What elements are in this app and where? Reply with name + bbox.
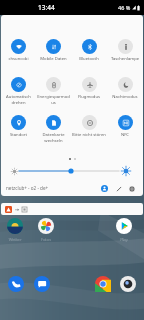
button[interactable]: Automatisch drehen	[1, 77, 36, 115]
button[interactable]	[1, 203, 143, 215]
button[interactable]: Phone	[8, 276, 24, 292]
staticText: Bitte nicht stören	[72, 132, 106, 138]
button[interactable]: Bluetooth	[71, 39, 107, 77]
staticText: Wetter	[7, 237, 23, 242]
button[interactable]: Fotos	[38, 218, 54, 242]
button[interactable]: Mobile Daten	[36, 39, 71, 77]
staticText: netzclub+ - o2 - de+	[6, 185, 49, 191]
button[interactable]: NFC	[107, 115, 143, 153]
staticText: Automatisch drehen	[2, 94, 35, 105]
button[interactable]: Energiesparmodus	[36, 77, 71, 115]
staticText: Standort	[2, 132, 35, 138]
button[interactable]: Datenkarte wechseln	[36, 115, 71, 153]
button[interactable]: Camera	[120, 276, 136, 292]
staticText: Energiesparmodus	[37, 94, 70, 105]
staticText: Flugmodus	[72, 94, 106, 100]
staticText: Datenkarte wechseln	[37, 132, 70, 143]
staticText: 13:44	[38, 3, 55, 12]
button[interactable]: Messages	[34, 276, 50, 292]
button[interactable]: Bitte nicht stören	[71, 115, 107, 153]
button[interactable]: Flugmodus	[71, 77, 107, 115]
staticText: Mobile Daten	[37, 56, 70, 62]
button[interactable]: Standort	[1, 115, 36, 153]
staticText: Bluetooth	[72, 56, 106, 62]
button[interactable]: Edit	[114, 184, 123, 193]
button[interactable]: Nachtmodus	[107, 77, 143, 115]
button[interactable]: Taschenlampe	[107, 39, 143, 77]
staticText: NFC	[108, 132, 142, 138]
button[interactable]: Account	[100, 184, 109, 193]
staticText: Fotos	[38, 237, 54, 242]
button[interactable]: Play Store	[116, 218, 132, 242]
button[interactable]: chsuncobi	[1, 39, 36, 77]
button[interactable]: Settings	[127, 184, 136, 193]
staticText: 46 %	[118, 4, 131, 11]
staticText: Nachtmodus	[108, 94, 142, 100]
button[interactable]: Chrome	[95, 276, 111, 292]
staticText: chsuncobi	[2, 56, 35, 62]
button[interactable]: Wetter	[7, 218, 23, 242]
staticText: Play Store	[116, 237, 132, 242]
staticText: Taschenlampe	[108, 56, 142, 62]
